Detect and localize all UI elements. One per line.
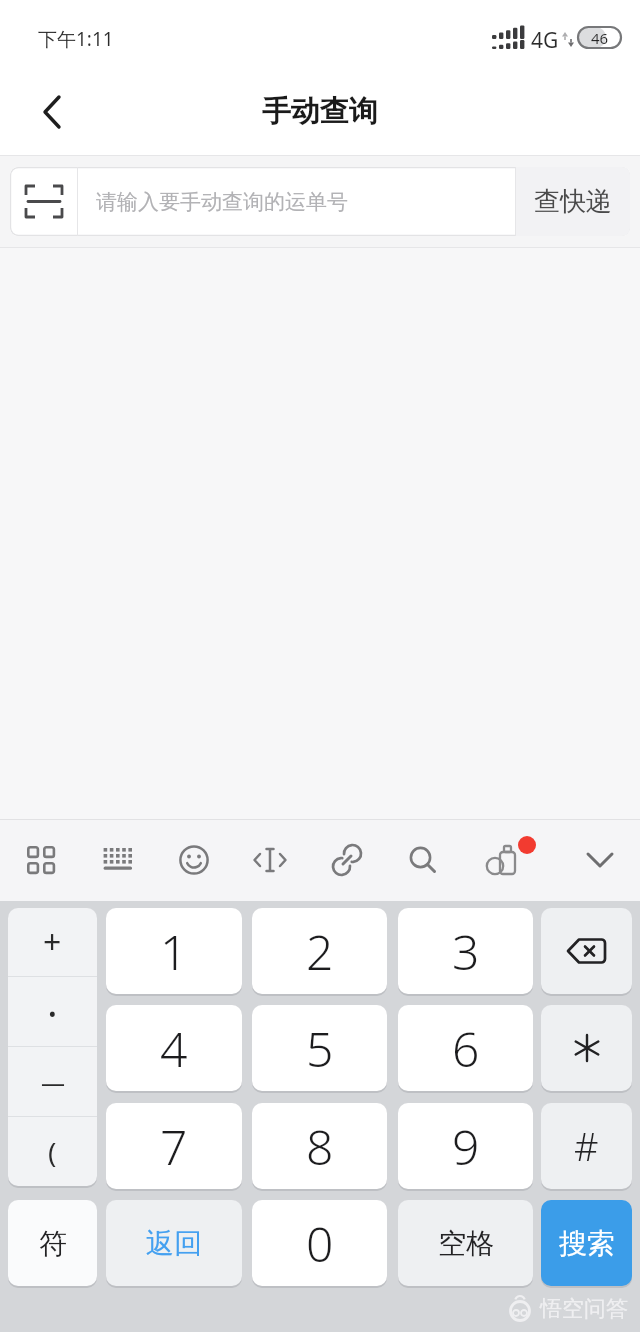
button[interactable]: 9 [398,1103,533,1189]
button[interactable]: 符 [8,1200,97,1286]
staticText: ( [48,1133,57,1171]
button[interactable]: 0 [252,1200,387,1286]
staticText: 3 [452,919,480,984]
staticText: 手动查询 [262,93,378,130]
button[interactable] [13,832,69,888]
button[interactable]: 请输入要手动查询的运单号 [78,167,515,236]
staticText: 4G [531,26,559,55]
staticText: 46 [591,28,609,48]
button[interactable]: 查快递 [516,167,630,236]
button[interactable]: # [541,1103,632,1189]
button[interactable]: 4 [106,1005,242,1091]
staticText: + [43,920,62,964]
staticText: 2 [306,919,334,984]
button[interactable]: + [8,908,97,976]
staticText: 6 [452,1016,480,1081]
button[interactable]: — [8,1047,97,1116]
button[interactable]: 1 [106,908,242,994]
button[interactable] [541,1005,632,1091]
staticText: 返回 [146,1226,202,1261]
button[interactable] [475,832,531,888]
button[interactable]: 搜索 [541,1200,632,1286]
staticText: 1 [160,919,188,984]
button[interactable]: 6 [398,1005,533,1091]
button[interactable] [166,832,222,888]
staticText: 4 [160,1016,188,1081]
button[interactable]: 2 [252,908,387,994]
staticText: 下午1:11 [38,26,114,52]
staticText: 7 [160,1114,188,1179]
button[interactable] [541,908,632,994]
staticText: 搜索 [559,1226,615,1261]
button[interactable] [10,167,77,236]
button[interactable]: 3 [398,908,533,994]
staticText: 9 [452,1114,480,1179]
button[interactable] [242,832,298,888]
button[interactable]: ( [8,1117,97,1186]
staticText: 8 [306,1114,334,1179]
button[interactable]: 8 [252,1103,387,1189]
staticText: · [47,985,58,1039]
button[interactable]: 7 [106,1103,242,1189]
button[interactable] [395,832,451,888]
button[interactable]: 5 [252,1005,387,1091]
staticText: 符 [39,1226,67,1261]
button[interactable] [572,832,628,888]
button[interactable] [24,84,80,140]
staticText: # [574,1120,599,1172]
staticText: 查快递 [534,185,612,218]
staticText: — [41,1065,65,1098]
staticText: 请输入要手动查询的运单号 [96,189,348,215]
button[interactable]: 返回 [106,1200,242,1286]
staticText: 5 [306,1016,334,1081]
staticText: 空格 [438,1226,494,1261]
staticText: 0 [306,1211,334,1276]
button[interactable]: 空格 [398,1200,533,1286]
button[interactable] [90,832,146,888]
button[interactable]: · [8,977,97,1046]
button[interactable] [319,832,375,888]
staticText: 悟空问答 [540,1295,628,1323]
